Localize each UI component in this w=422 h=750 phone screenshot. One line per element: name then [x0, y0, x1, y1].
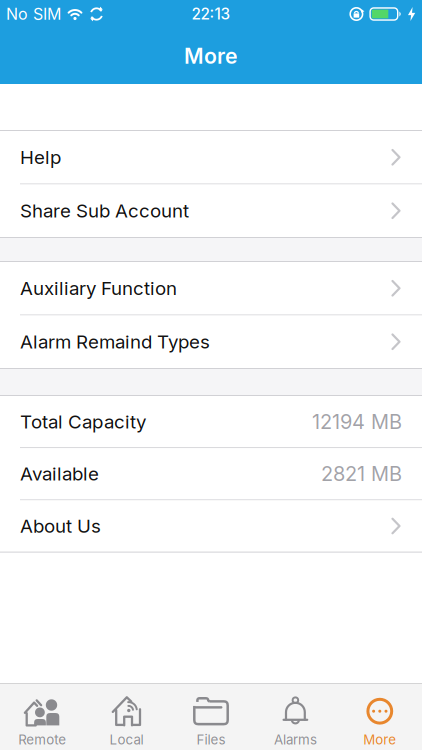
button[interactable]: About Us	[0, 500, 422, 552]
staticText: 12194 MB	[312, 409, 402, 434]
staticText: Share Sub Account	[20, 199, 189, 222]
staticText: Available	[20, 462, 99, 485]
button[interactable]: Remote	[0, 684, 84, 750]
staticText: Remote	[18, 732, 66, 748]
staticText: Alarm Remaind Types	[20, 330, 210, 353]
staticText: More	[363, 732, 396, 748]
button[interactable]: More	[338, 684, 422, 750]
staticText: About Us	[20, 515, 101, 537]
staticText: Total Capacity	[20, 410, 146, 433]
staticText: Alarms	[274, 732, 317, 748]
staticText: Files	[196, 732, 225, 748]
staticText: Help	[20, 146, 61, 169]
button[interactable]: Local	[84, 684, 169, 750]
staticText: Local	[110, 732, 144, 748]
staticText: 2821 MB	[321, 462, 402, 486]
button[interactable]: Auxiliary Function	[0, 262, 422, 314]
staticText: No SIM	[6, 4, 61, 24]
staticText: Auxiliary Function	[20, 277, 177, 300]
staticText: More	[184, 43, 238, 69]
button[interactable]: Alarm Remaind Types	[0, 315, 422, 368]
button[interactable]: Files	[169, 684, 253, 750]
button[interactable]: Help	[0, 131, 422, 183]
button[interactable]: Alarms	[253, 684, 338, 750]
button[interactable]: Share Sub Account	[0, 184, 422, 237]
staticText: 22:13	[191, 5, 230, 23]
